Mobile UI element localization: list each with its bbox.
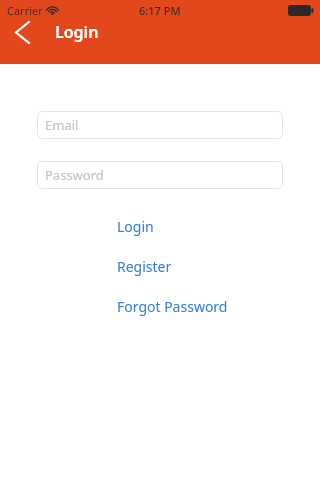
button[interactable]: Email — [37, 111, 283, 139]
staticText: Password — [45, 166, 104, 184]
button[interactable]: Back — [0, 20, 44, 44]
staticText: Forgot Password — [117, 297, 228, 316]
staticText: Register — [117, 257, 172, 276]
button[interactable]: Password — [37, 161, 283, 189]
button[interactable]: Login — [117, 217, 154, 236]
button[interactable]: Register — [117, 257, 172, 276]
staticText: Email — [45, 116, 79, 134]
button[interactable]: Forgot Password — [117, 297, 228, 316]
staticText: Login — [117, 217, 154, 236]
staticText: Login — [55, 21, 99, 43]
staticText: 6:17 PM — [139, 3, 181, 18]
staticText: Carrier — [7, 3, 43, 18]
